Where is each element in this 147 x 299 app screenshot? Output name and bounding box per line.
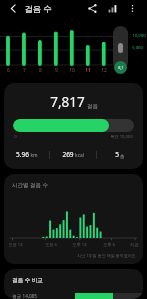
staticText: 10: [69, 67, 75, 74]
button[interactable]: Share: [84, 0, 101, 17]
staticText: 269: [62, 150, 74, 159]
button[interactable]: 269: [50, 150, 96, 159]
staticText: 오전 12: [8, 242, 23, 248]
staticText: 7: [23, 67, 26, 74]
button[interactable]: More options: [124, 0, 141, 17]
staticText: 6: [7, 67, 10, 74]
staticText: 걸음: [87, 103, 98, 110]
button[interactable]: Scale slider: [113, 26, 128, 70]
staticText: km: [30, 152, 38, 159]
staticText: 목표 10,000: [110, 134, 133, 140]
button[interactable]: Back: [5, 0, 22, 17]
button[interactable]: 걸음 수 비교: [4, 269, 143, 299]
staticText: 5: [115, 150, 119, 159]
staticText: 11: [85, 67, 91, 74]
staticText: 걸음 수: [24, 3, 52, 15]
button[interactable]: 걸음 수: [24, 3, 52, 15]
staticText: 시간별 걸음 수: [12, 181, 48, 189]
staticText: 0: [14, 134, 17, 140]
staticText: 지금: [130, 242, 139, 247]
staticText: 평균 14,085: [12, 293, 37, 299]
staticText: 9: [55, 67, 58, 74]
staticText: 층: [120, 153, 125, 159]
staticText: 오후 12: [72, 242, 87, 248]
button[interactable]: 7,817: [4, 83, 143, 169]
button[interactable]: 5.96: [4, 150, 49, 159]
button[interactable]: 시간별 걸음 수: [4, 174, 143, 264]
staticText: 8: [39, 67, 42, 74]
staticText: 8,1: [118, 65, 124, 70]
staticText: 12: [101, 67, 107, 74]
staticText: 5,000: [132, 45, 143, 51]
button[interactable]: Statistics: [104, 0, 121, 17]
staticText: 걸음 수 비교: [12, 276, 43, 284]
staticText: 오후 6: [103, 242, 115, 248]
staticText: 7,817: [50, 93, 85, 111]
staticText: 10,000: [132, 33, 146, 39]
staticText: kcal: [75, 152, 84, 159]
button[interactable]: 5: [97, 150, 143, 159]
staticText: 오전 6: [45, 242, 57, 248]
staticText: 지난 1주일 동안 매일 움직였어요: [77, 253, 136, 258]
staticText: 5.96: [16, 150, 29, 159]
